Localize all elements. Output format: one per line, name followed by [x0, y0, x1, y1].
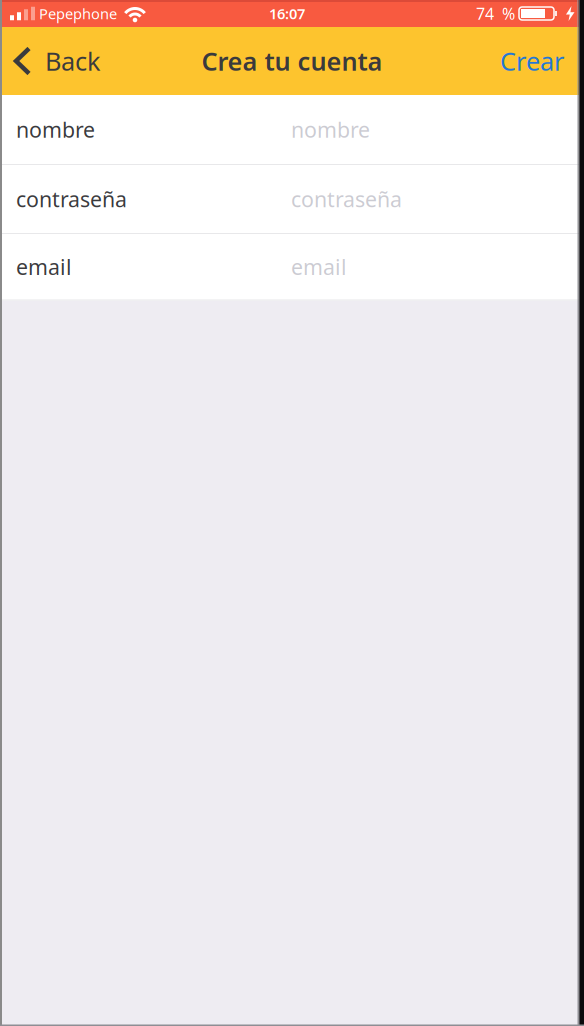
staticText: nombre — [291, 115, 370, 144]
button[interactable]: Back — [0, 44, 101, 78]
staticText: Crear — [500, 44, 564, 78]
button[interactable]: Crear — [500, 44, 584, 78]
staticText: email — [291, 253, 347, 281]
staticText: Back — [45, 44, 101, 78]
staticText: contraseña — [291, 185, 402, 213]
button[interactable]: email — [0, 234, 584, 299]
button[interactable]: nombre — [0, 95, 584, 164]
button[interactable]: contraseña — [0, 165, 584, 233]
staticText: 16:07 — [269, 4, 305, 23]
staticText: 74 % — [476, 3, 515, 24]
staticText: Crea tu cuenta — [201, 44, 382, 78]
staticText: contraseña — [16, 185, 127, 213]
staticText: email — [16, 253, 72, 281]
staticText: nombre — [16, 115, 95, 144]
staticText: Pepephone — [39, 4, 117, 23]
